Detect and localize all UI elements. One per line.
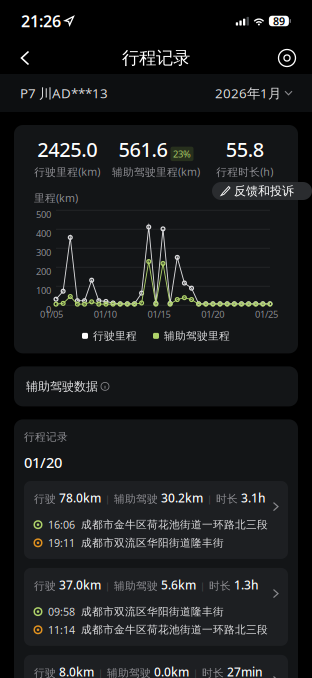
staticText: 行驶里程(km) bbox=[34, 165, 100, 179]
staticText: 01/20 bbox=[24, 452, 62, 472]
staticText: 辅助驾驶里程(km) bbox=[112, 165, 200, 179]
staticText: 2425.0 bbox=[37, 136, 97, 163]
staticText: 23% bbox=[173, 148, 191, 160]
staticText: 行驶 bbox=[34, 579, 56, 592]
staticText: 37.0km bbox=[56, 577, 101, 593]
staticText: 行驶 bbox=[34, 492, 56, 506]
button[interactable]: P7 川AD***13 bbox=[20, 84, 108, 102]
button[interactable]: 行驶 bbox=[24, 481, 288, 559]
staticText: 里程(km) bbox=[34, 191, 78, 205]
button[interactable]: 返回 bbox=[8, 41, 42, 75]
staticText: 500 bbox=[36, 208, 51, 221]
staticText: 3.1h bbox=[238, 490, 266, 506]
staticText: 行程时长(h) bbox=[216, 165, 273, 179]
staticText: 成都市双流区华阳街道隆丰街 bbox=[81, 536, 224, 549]
staticText: 行程记录 bbox=[122, 47, 190, 69]
staticText: P7 川AD***13 bbox=[20, 84, 108, 102]
button[interactable]: 2026年1月 bbox=[215, 84, 292, 102]
staticText: 成都市金牛区荷花池街道一环路北三段 bbox=[81, 518, 268, 531]
staticText: 300 bbox=[36, 246, 51, 259]
staticText: 辅助驾驶 bbox=[114, 579, 158, 592]
staticText: 200 bbox=[36, 265, 51, 278]
staticText: 400 bbox=[36, 227, 51, 240]
staticText: 100 bbox=[36, 284, 51, 297]
staticText: 55.8 bbox=[226, 136, 264, 163]
staticText: 辅助驾驶 bbox=[114, 492, 158, 506]
staticText: 1.3h bbox=[231, 577, 259, 593]
button[interactable]: 辅助驾驶数据 bbox=[14, 366, 298, 406]
staticText: 01/05 bbox=[40, 308, 63, 320]
staticText: | bbox=[189, 667, 202, 678]
staticText: 行程记录 bbox=[24, 430, 68, 443]
staticText: 成都市双流区华阳街道隆丰街 bbox=[81, 605, 224, 618]
staticText: 89 bbox=[273, 14, 285, 28]
button[interactable]: 设置 bbox=[270, 41, 304, 75]
staticText: 成都市金牛区荷花池街道一环路北三段 bbox=[81, 623, 268, 636]
button[interactable]: 反馈和投诉 bbox=[212, 182, 312, 200]
staticText: 27min bbox=[224, 664, 263, 678]
staticText: 行驶里程 bbox=[93, 329, 137, 342]
staticText: | bbox=[101, 580, 114, 592]
staticText: 01/25 bbox=[255, 308, 278, 320]
staticText: 8.0km bbox=[56, 664, 94, 678]
staticText: 78.0km bbox=[56, 490, 101, 506]
staticText: 11:14 bbox=[48, 623, 75, 637]
staticText: 09:58 bbox=[48, 604, 75, 619]
staticText: 时长 bbox=[202, 666, 224, 678]
staticText: 16:06 bbox=[48, 518, 75, 532]
staticText: 辅助驾驶里程 bbox=[164, 329, 230, 342]
staticText: 21:26 bbox=[21, 10, 61, 32]
staticText: 01/15 bbox=[147, 308, 170, 320]
staticText: 561.6 bbox=[118, 136, 167, 163]
staticText: 01/10 bbox=[94, 308, 117, 320]
staticText: 0.0km bbox=[151, 664, 189, 678]
staticText: 时长 bbox=[216, 492, 238, 506]
staticText: 反馈和投诉 bbox=[234, 184, 294, 198]
staticText: 01/20 bbox=[201, 308, 224, 320]
staticText: 30.2km bbox=[158, 490, 203, 506]
staticText: | bbox=[94, 667, 107, 678]
staticText: 0 bbox=[46, 303, 51, 316]
staticText: | bbox=[101, 493, 114, 505]
staticText: 辅助驾驶数据 bbox=[26, 379, 98, 394]
staticText: 辅助驾驶 bbox=[107, 666, 151, 678]
staticText: 2026年1月 bbox=[215, 84, 281, 102]
staticText: 时长 bbox=[209, 579, 231, 592]
staticText: | bbox=[196, 580, 209, 592]
staticText: | bbox=[203, 493, 216, 505]
staticText: 行驶 bbox=[34, 666, 56, 678]
button[interactable]: 行驶 bbox=[24, 655, 288, 678]
button[interactable]: 行驶 bbox=[24, 568, 288, 646]
staticText: 19:11 bbox=[48, 536, 75, 550]
staticText: 5.6km bbox=[158, 577, 196, 593]
